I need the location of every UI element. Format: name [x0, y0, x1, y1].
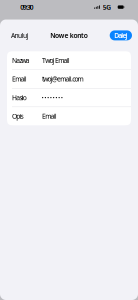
button[interactable]: Anuluj — [9, 28, 30, 43]
staticText: Twoj Email — [42, 56, 70, 65]
staticText: Nowe konto — [50, 31, 88, 40]
staticText: Email — [12, 75, 27, 83]
staticText: Anuluj — [11, 31, 28, 40]
button[interactable]: Nazwa — [7, 51, 131, 69]
button[interactable]: Email — [7, 70, 131, 88]
staticText: 09:30 — [20, 3, 34, 12]
button[interactable]: Opis — [7, 107, 131, 125]
staticText: Hasło — [12, 93, 27, 102]
staticText: 5G — [103, 3, 111, 12]
staticText: Opis — [12, 112, 24, 121]
staticText: Email — [42, 112, 57, 121]
button[interactable]: Hasło — [7, 88, 131, 107]
staticText: Dalej — [114, 31, 128, 40]
staticText: twoj@email.com — [42, 75, 84, 83]
button[interactable]: Dalej — [110, 30, 132, 40]
staticText: Nazwa — [12, 56, 30, 65]
